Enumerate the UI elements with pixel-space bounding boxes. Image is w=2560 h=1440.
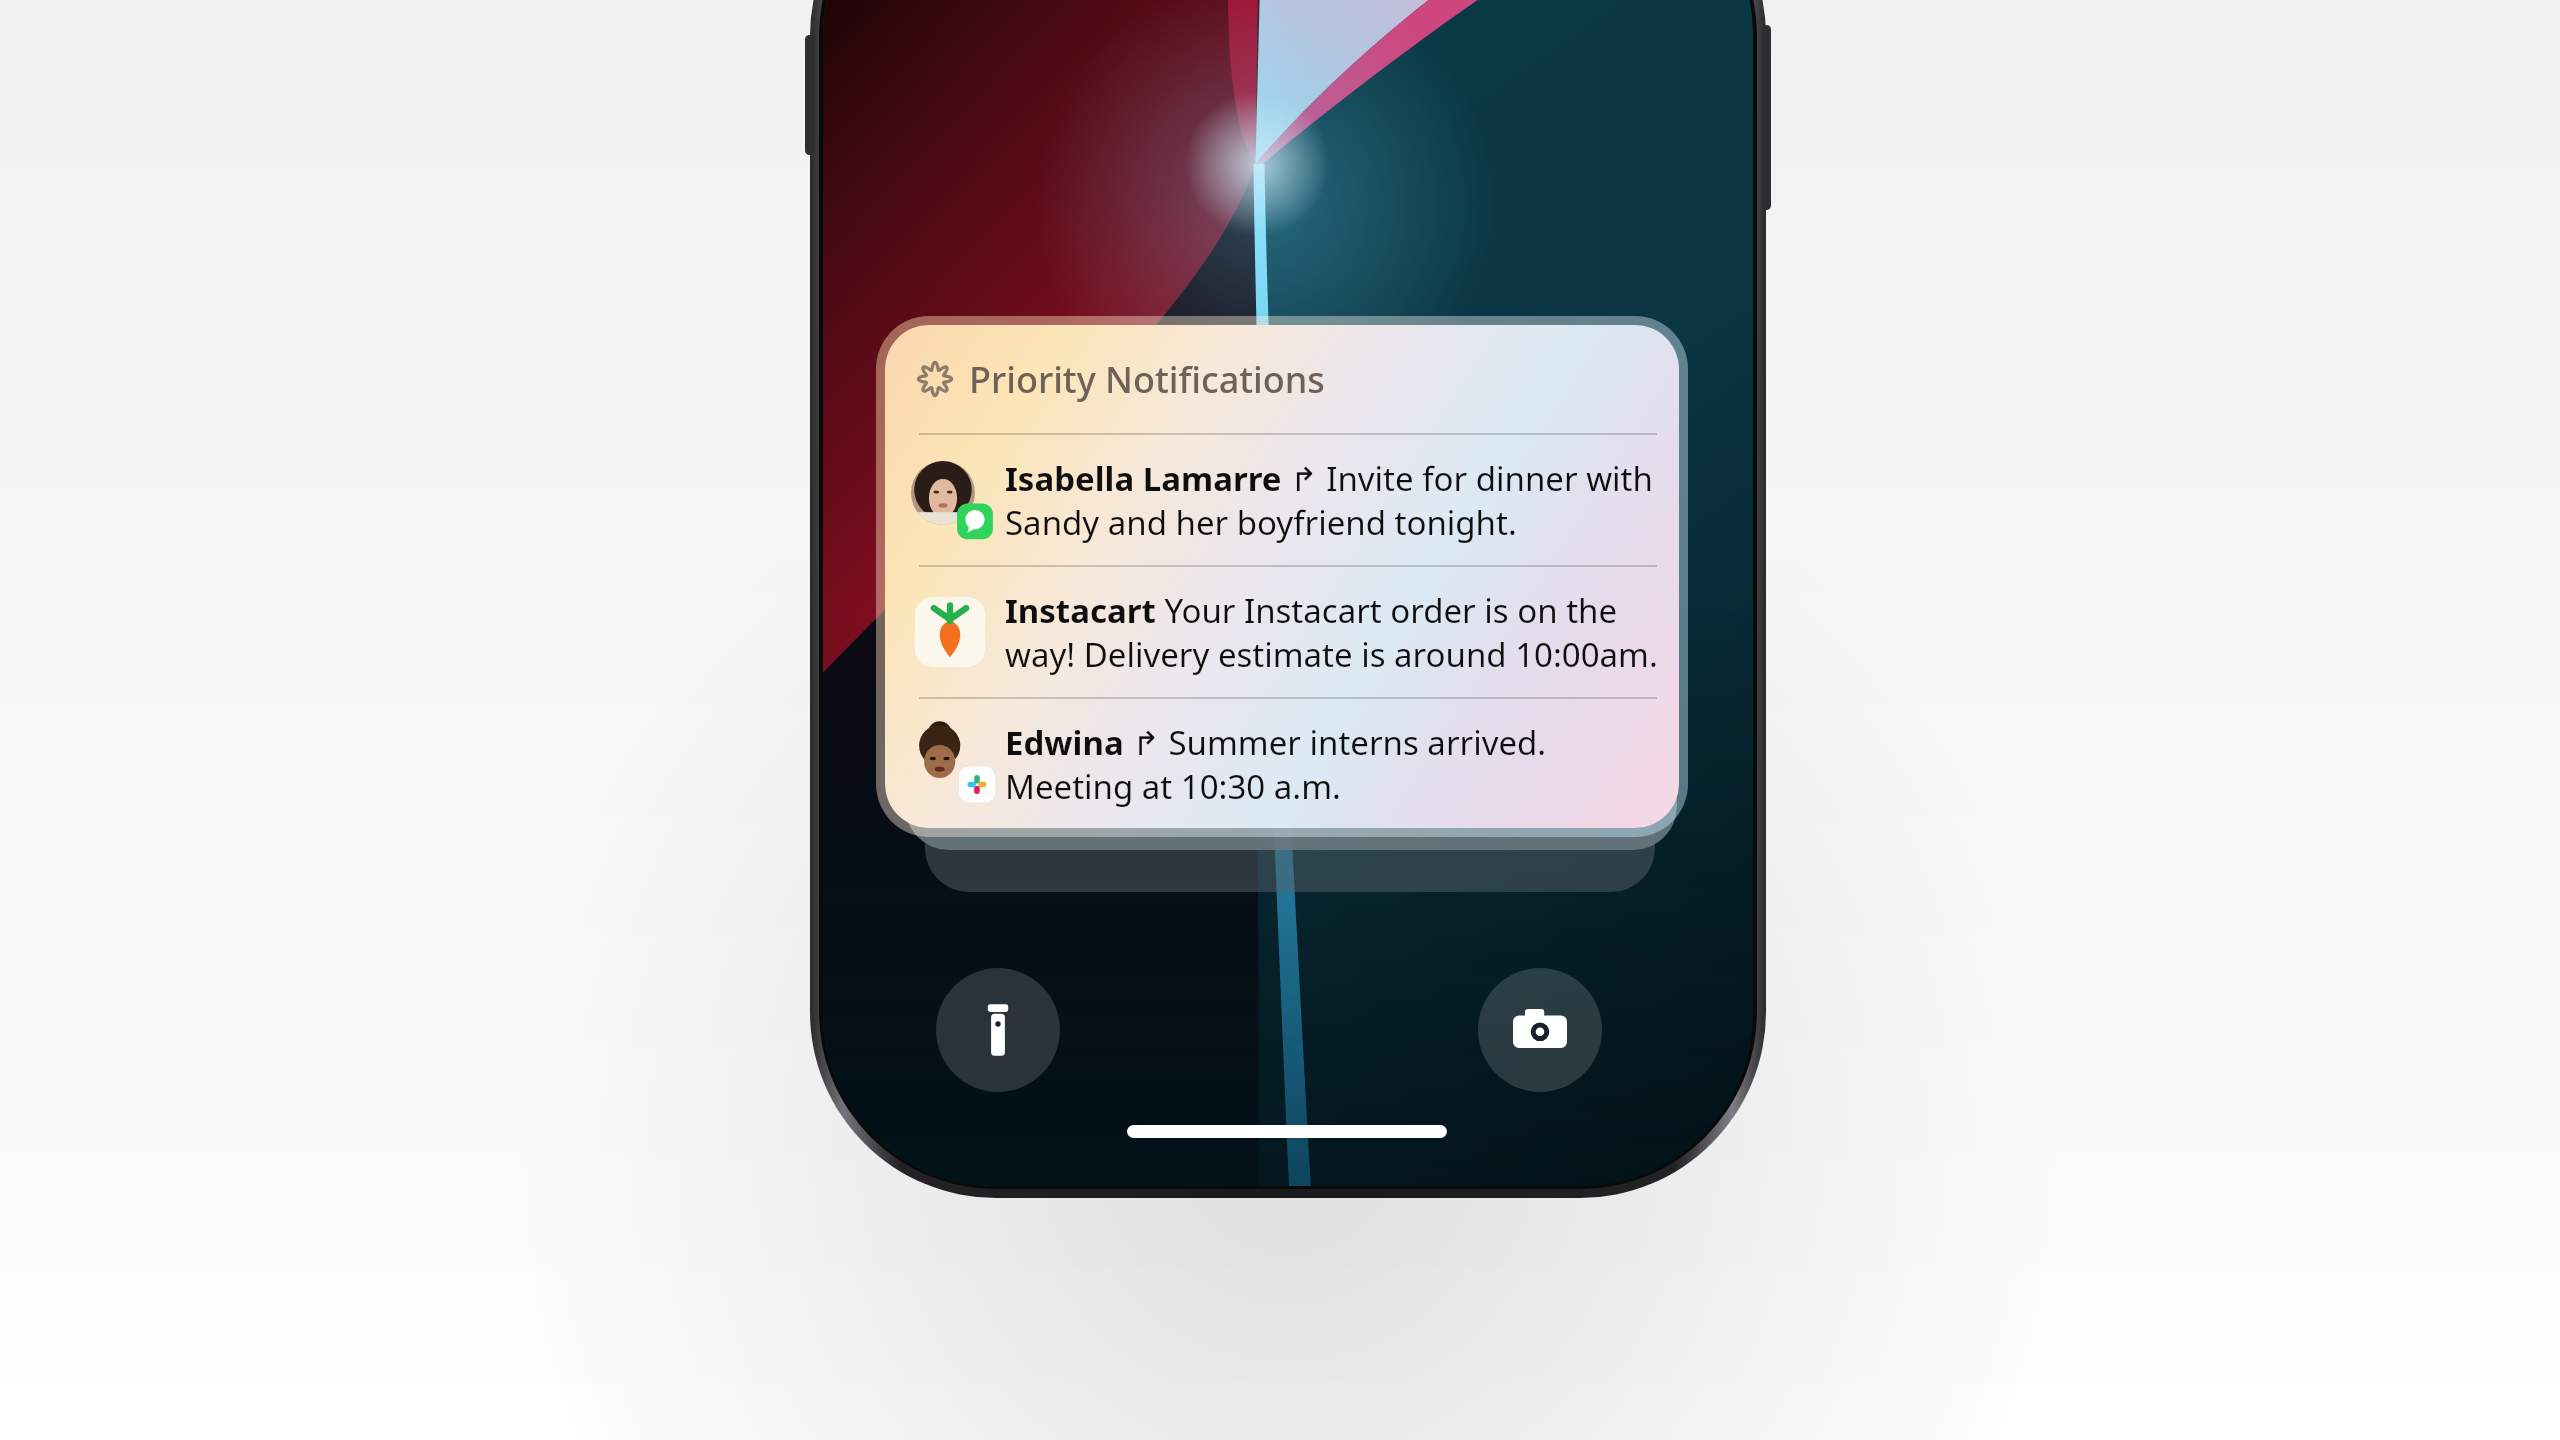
staticText: Isabella Lamarre ↱ Invite for dinner wit…: [1005, 456, 1661, 544]
button[interactable]: Camera: [1478, 968, 1602, 1092]
staticText: Lia Longo Savita booked house...: [1007, 776, 1535, 817]
button[interactable]: [925, 782, 1655, 892]
staticText: Edwina ↱ Summer interns arrived. Meeting…: [1005, 720, 1661, 808]
button[interactable]: Instacart Your Instacart order is on the…: [885, 567, 1679, 697]
button[interactable]: Priority Notifications: [885, 325, 1679, 828]
button[interactable]: Flashlight: [936, 968, 1060, 1092]
staticText: Priority Notifications: [969, 355, 1325, 404]
button[interactable]: Lia Longo Savita booked house...: [905, 742, 1677, 850]
staticText: Instacart Your Instacart order is on the…: [1005, 588, 1661, 676]
button[interactable]: Edwina ↱ Summer interns arrived. Meeting…: [885, 699, 1679, 828]
button[interactable]: Isabella Lamarre ↱ Invite for dinner wit…: [885, 435, 1679, 565]
